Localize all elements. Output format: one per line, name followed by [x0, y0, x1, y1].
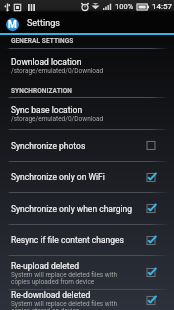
button[interactable]: Synchronize only on WiFi [0, 162, 174, 192]
staticText: Sync base location [11, 105, 83, 115]
button[interactable]: Resync if file content changes [0, 225, 174, 255]
button[interactable]: Toggle setting [144, 266, 157, 279]
staticText: GENERAL SETTINGS [11, 37, 74, 45]
staticText: M [8, 19, 17, 31]
button[interactable]: Toggle setting [144, 202, 157, 215]
staticText: System will replace deleted files with c… [11, 271, 117, 285]
staticText: /storage/emulated/0/Download [11, 67, 104, 75]
button[interactable]: Re-download deleted [0, 290, 174, 310]
button[interactable]: Toggle setting [144, 171, 157, 184]
staticText: Re-download deleted [11, 290, 91, 300]
staticText: SYNCHRONIZATION [11, 87, 73, 95]
staticText: Synchronize photos [11, 141, 144, 151]
staticText: Re-upload deleted [11, 261, 79, 271]
staticText: /storage/emulated/0/Download [11, 115, 104, 123]
button[interactable]: Synchronize photos [0, 130, 174, 161]
staticText: Synchronize only when charging [11, 204, 144, 214]
button[interactable]: Sync base location [0, 98, 174, 129]
staticText: Settings [27, 18, 60, 29]
staticText: 100% [115, 2, 134, 11]
button[interactable]: Download location [0, 49, 174, 82]
button[interactable]: Synchronize only when charging [0, 193, 174, 224]
button[interactable]: Toggle setting [144, 294, 157, 307]
button[interactable]: Toggle setting [144, 139, 157, 152]
staticText: Synchronize only on WiFi [11, 172, 144, 182]
staticText: Resync if file content changes [11, 235, 144, 245]
staticText: 14:57 [152, 2, 172, 11]
button[interactable]: M [0, 13, 174, 33]
staticText: Download location [11, 57, 82, 67]
button[interactable]: Toggle setting [144, 234, 157, 247]
staticText: System will replace deleted files with c… [11, 300, 117, 310]
button[interactable]: Re-upload deleted [0, 256, 174, 289]
